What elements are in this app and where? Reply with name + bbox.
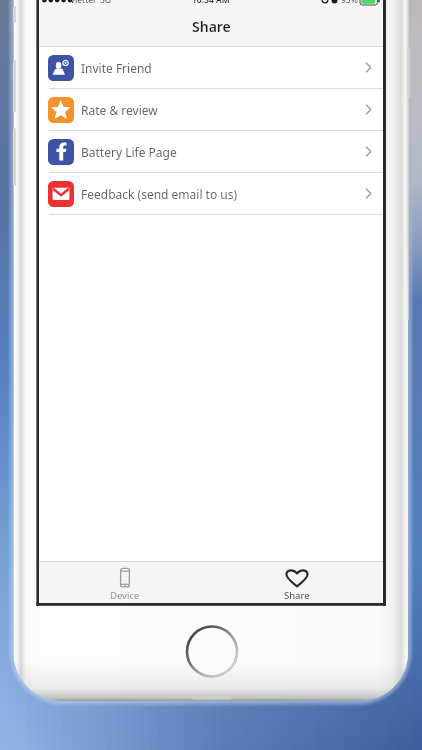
staticText: 93% xyxy=(341,0,358,6)
staticText: Battery Life Page xyxy=(81,144,177,160)
button[interactable]: Device xyxy=(39,562,211,602)
staticText: Share xyxy=(192,17,231,36)
staticText: Rate & review xyxy=(81,102,158,118)
button[interactable]: Share xyxy=(211,562,383,602)
staticText: Invite Friend xyxy=(81,60,152,76)
button[interactable]: Invite Friend xyxy=(39,47,383,88)
button[interactable]: Battery Life Page xyxy=(39,131,383,172)
staticText: Viettel xyxy=(70,0,96,6)
staticText: Feedback (send email to us) xyxy=(81,186,238,202)
staticText: Share xyxy=(284,589,310,602)
staticText: 10:34 AM xyxy=(192,0,230,6)
staticText: Device xyxy=(110,589,140,602)
button[interactable]: Rate & review xyxy=(39,89,383,130)
staticText: 3G xyxy=(100,0,112,6)
button[interactable]: Feedback (send email to us) xyxy=(39,173,383,214)
